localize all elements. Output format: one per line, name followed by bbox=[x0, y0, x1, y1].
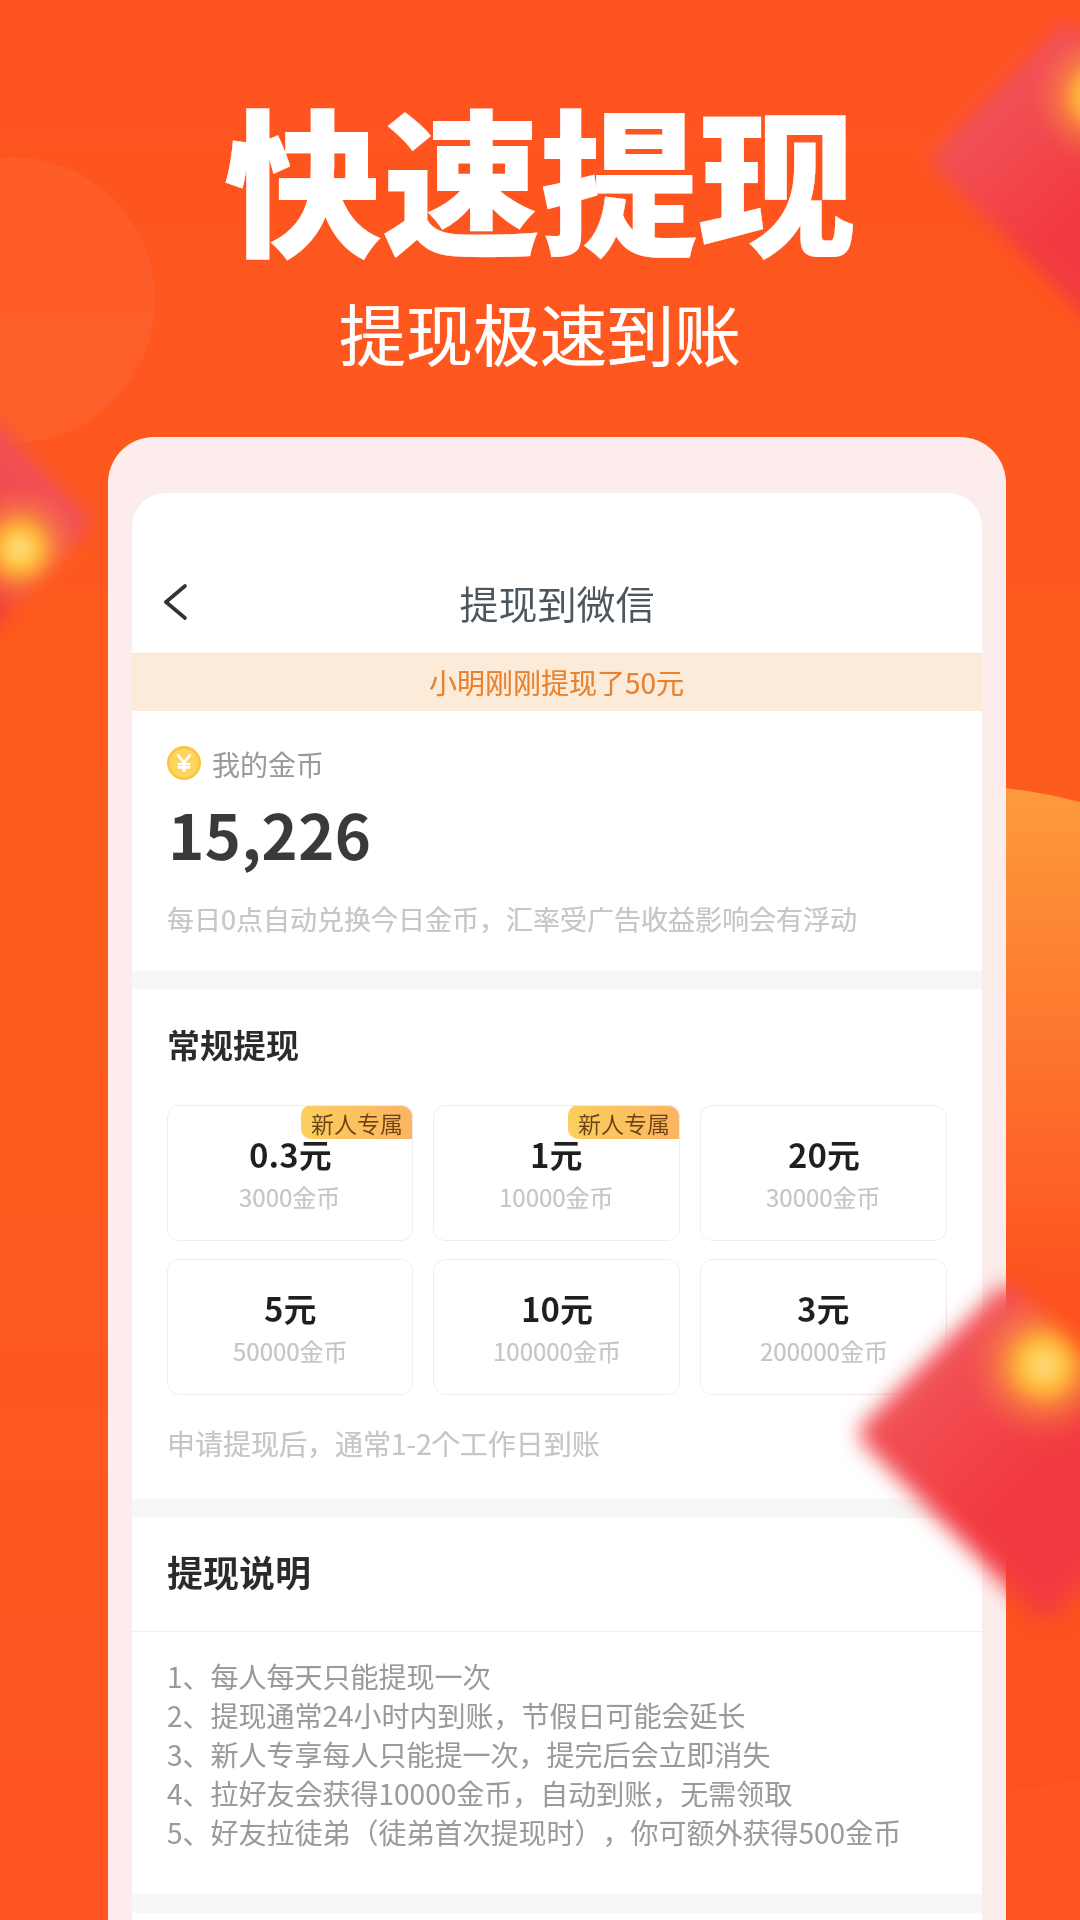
staticText: 20元 bbox=[788, 1130, 860, 1178]
staticText: 我的金币 bbox=[212, 744, 325, 785]
staticText: 30000金币 bbox=[766, 1179, 881, 1214]
button[interactable]: 20元 bbox=[700, 1105, 947, 1241]
staticText: 50000金币 bbox=[233, 1333, 348, 1368]
staticText: 提现说明 bbox=[167, 1545, 312, 1597]
staticText: 新人专属 bbox=[311, 1106, 403, 1139]
button[interactable]: Back bbox=[133, 563, 213, 643]
staticText: 0.3元 bbox=[249, 1130, 332, 1178]
staticText: 3元 bbox=[797, 1284, 850, 1332]
staticText: 10元 bbox=[521, 1284, 593, 1332]
staticText: 10000金币 bbox=[499, 1179, 614, 1214]
staticText: 1元 bbox=[530, 1130, 583, 1178]
staticText: 申请提现后，通常1-2个工作日到账 bbox=[167, 1423, 600, 1464]
button[interactable]: 3元 bbox=[700, 1259, 947, 1395]
button[interactable]: 10元 bbox=[433, 1259, 680, 1395]
staticText: 每日0点自动兑换今日金币，汇率受广告收益影响会有浮动 bbox=[167, 899, 857, 938]
staticText: 1、每人每天只能提现一次 2、提现通常24小时内到账，节假日可能会延长 3、新人… bbox=[167, 1656, 902, 1852]
staticText: 100000金币 bbox=[493, 1333, 621, 1368]
staticText: 提现极速到账 bbox=[0, 283, 1080, 380]
staticText: 常规提现 bbox=[167, 1020, 299, 1068]
button[interactable]: 5元 bbox=[167, 1259, 413, 1395]
staticText: 15,226 bbox=[168, 788, 372, 878]
staticText: 3000金币 bbox=[239, 1179, 341, 1214]
staticText: 小明刚刚提现了50元 bbox=[429, 662, 685, 703]
button[interactable]: 0.3元 bbox=[167, 1105, 413, 1241]
staticText: 新人专属 bbox=[578, 1106, 670, 1139]
button[interactable]: 1元 bbox=[433, 1105, 680, 1241]
staticText: 5元 bbox=[264, 1284, 317, 1332]
staticText: 快速提现 bbox=[0, 61, 1080, 290]
staticText: 200000金币 bbox=[760, 1333, 888, 1368]
staticText: 提现到微信 bbox=[132, 574, 982, 630]
